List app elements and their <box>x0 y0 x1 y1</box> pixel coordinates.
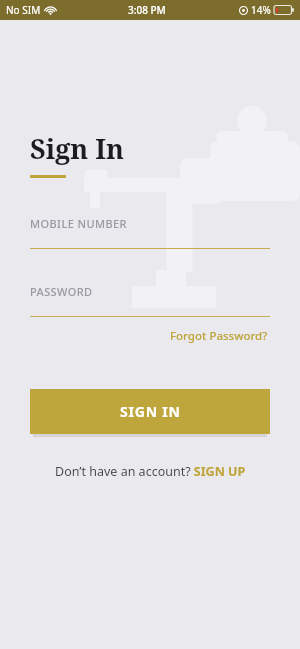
staticText: 14% <box>251 3 271 17</box>
staticText: PASSWORD <box>30 284 93 299</box>
staticText: No SIM <box>6 3 41 17</box>
staticText: MOBILE NUMBER <box>30 216 127 231</box>
button[interactable]: SIGN IN <box>30 389 270 434</box>
staticText: Forgot Password? <box>170 328 268 344</box>
button[interactable]: Forgot Password? <box>168 325 270 347</box>
button[interactable]: Don’t have an account? SIGN UP <box>51 460 250 483</box>
staticText: Sign In <box>30 130 125 167</box>
staticText: 3:08 PM <box>128 3 166 17</box>
staticText: Don’t have an account? SIGN UP <box>55 463 246 480</box>
staticText: SIGN IN <box>120 402 181 421</box>
